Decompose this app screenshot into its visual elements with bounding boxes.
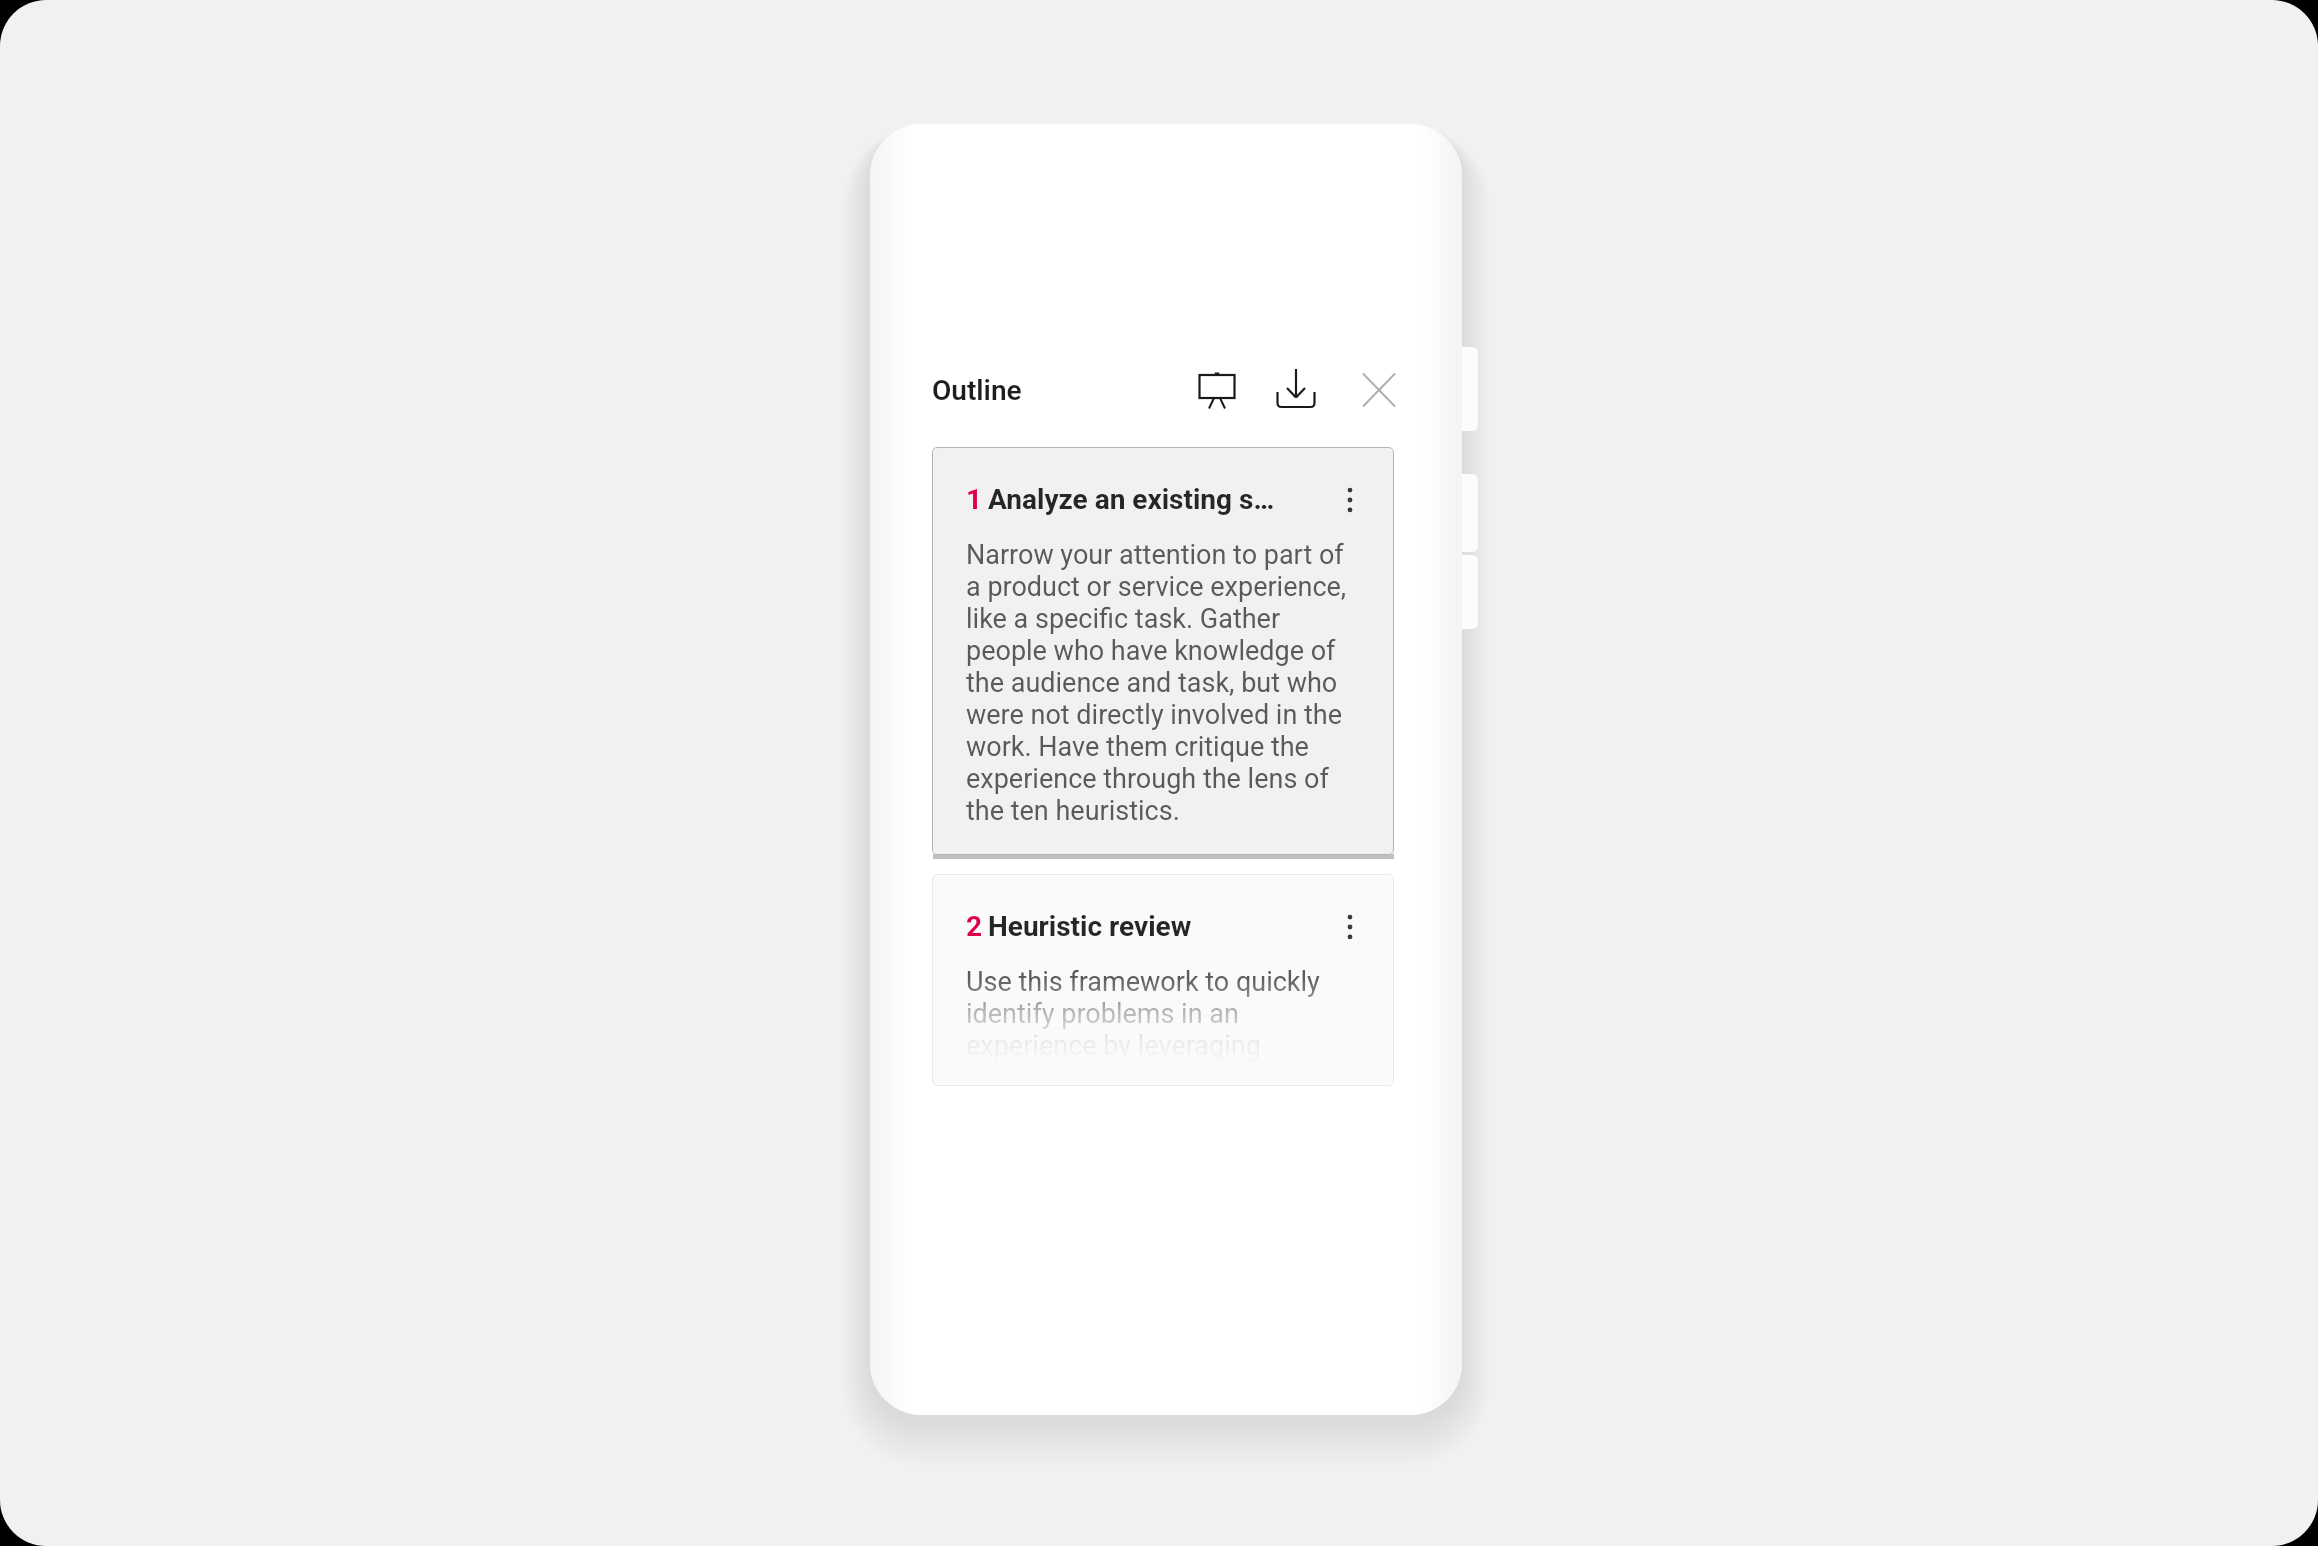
- staticText: 2: [966, 910, 983, 943]
- staticText: Outline: [932, 374, 1022, 407]
- staticText: Analyze an existing s…: [988, 483, 1275, 516]
- staticText: Narrow your attention to part of a produ…: [966, 539, 1358, 827]
- button[interactable]: 2: [932, 874, 1394, 1086]
- button[interactable]: More options: [1329, 906, 1371, 948]
- button[interactable]: Download: [1268, 362, 1324, 418]
- staticText: 1: [966, 483, 983, 516]
- button[interactable]: 1: [932, 447, 1394, 855]
- button[interactable]: Close: [1351, 362, 1407, 418]
- staticText: Heuristic review: [988, 910, 1192, 943]
- button[interactable]: More options: [1329, 479, 1371, 521]
- staticText: Use this framework to quickly identify p…: [966, 966, 1358, 1086]
- button[interactable]: Present: [1189, 362, 1245, 418]
